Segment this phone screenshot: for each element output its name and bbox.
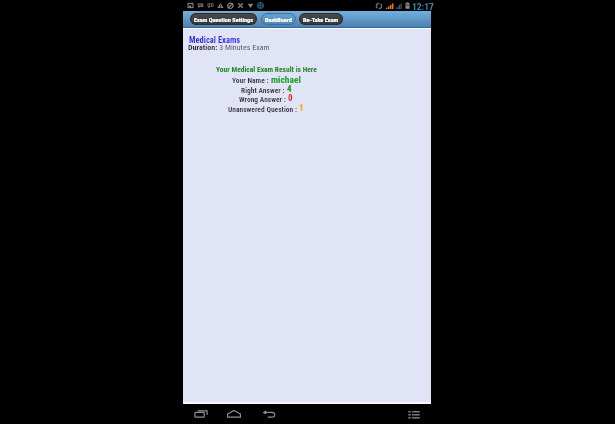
button[interactable]: Menu [402, 404, 425, 424]
staticText: Duration: 3 Minutes Exam [188, 43, 270, 52]
staticText: Wrong Answer : [239, 95, 288, 104]
button[interactable]: Exam Question Settings [190, 13, 257, 25]
button[interactable]: Re-Take Exam [299, 13, 343, 25]
staticText: DashBoard [265, 16, 292, 23]
button[interactable]: Recents [189, 404, 212, 424]
button[interactable]: Back [257, 404, 280, 424]
button[interactable]: DashBoard [261, 13, 296, 25]
staticText: Exam Question Settings [194, 16, 253, 23]
staticText: Unanswered Question : [228, 105, 299, 114]
staticText: michael [271, 74, 301, 85]
staticText: 1 [299, 103, 304, 114]
staticText: Medical Exams [189, 35, 241, 45]
staticText: Right Answer : [241, 86, 287, 95]
staticText: 12:17 [412, 1, 434, 12]
staticText: Re-Take Exam [303, 16, 339, 23]
staticText: Your Name : [232, 76, 271, 85]
staticText: 0 [288, 93, 293, 104]
staticText: Your Medical Exam Result is Here [216, 65, 317, 74]
staticText: 4 [287, 84, 292, 95]
button[interactable]: Home [222, 404, 245, 424]
